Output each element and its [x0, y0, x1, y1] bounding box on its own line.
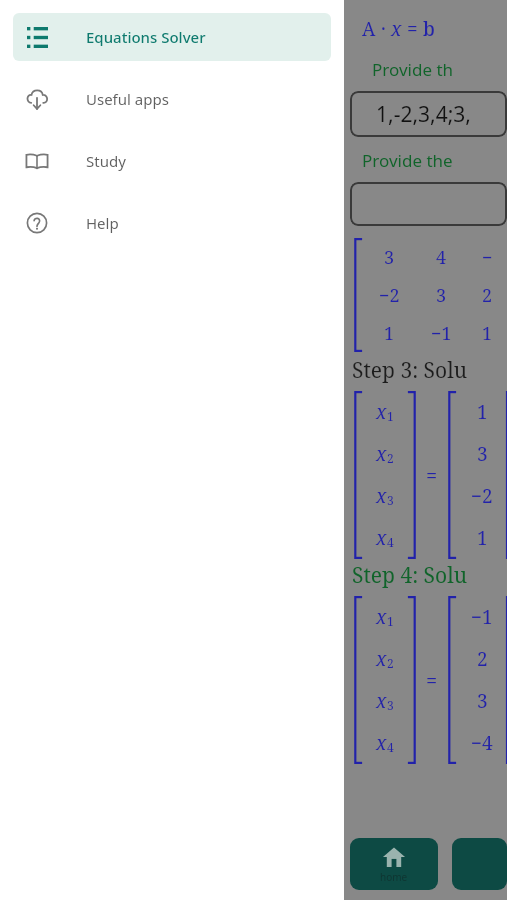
staticText: Provide the	[362, 149, 453, 172]
staticText: −4	[471, 730, 493, 756]
staticText: ·	[376, 16, 391, 42]
staticText: Useful apps	[86, 89, 169, 109]
staticText: 2	[477, 646, 488, 672]
staticText: 4	[436, 245, 447, 270]
staticText: x	[376, 441, 387, 467]
staticText: 1	[477, 525, 488, 551]
staticText: 3	[387, 697, 394, 713]
staticText: x	[376, 399, 387, 425]
staticText: =	[426, 667, 438, 694]
staticText: Help	[86, 213, 119, 233]
staticText: 2	[482, 283, 493, 308]
staticText: 1	[387, 613, 394, 629]
staticText: 4	[387, 739, 394, 755]
staticText: x	[376, 604, 387, 630]
staticText: x	[376, 688, 387, 714]
staticText: 1	[482, 321, 493, 346]
button[interactable]: Help	[13, 199, 331, 247]
staticText: Step 4: Solu	[352, 561, 467, 590]
button[interactable]: Study	[13, 137, 331, 185]
staticText: −2	[471, 483, 493, 509]
staticText: home	[380, 870, 408, 884]
staticText: 3	[436, 283, 447, 308]
staticText: 2	[387, 655, 394, 671]
staticText: Provide th	[372, 58, 454, 81]
staticText: x	[376, 646, 387, 672]
staticText: −1	[471, 604, 493, 630]
staticText: 1,-2,3,4;3,	[376, 100, 471, 129]
staticText: −	[482, 245, 493, 270]
staticText: 3	[384, 245, 395, 270]
button[interactable]: Next	[452, 838, 507, 890]
staticText: 1	[477, 399, 488, 425]
staticText: −2	[379, 283, 400, 308]
staticText: 4	[387, 534, 394, 550]
staticText: 3	[477, 688, 488, 714]
staticText: b	[423, 16, 435, 42]
staticText: =	[426, 462, 438, 489]
staticText: 2	[387, 450, 394, 466]
staticText: −1	[431, 321, 452, 346]
button[interactable]	[350, 182, 507, 226]
staticText: 1	[387, 408, 394, 424]
staticText: x	[376, 483, 387, 509]
button[interactable]: 1,-2,3,4;3,	[350, 91, 507, 137]
staticText: 1	[384, 321, 395, 346]
staticText: x	[376, 525, 387, 551]
button[interactable]: Useful apps	[13, 75, 331, 123]
button[interactable]: Equations Solver	[13, 13, 331, 61]
staticText: Study	[86, 151, 126, 171]
staticText: 3	[477, 441, 488, 467]
staticText: A	[362, 16, 376, 42]
staticText: =	[402, 16, 423, 42]
staticText: Equations Solver	[86, 27, 206, 47]
staticText: 3	[387, 492, 394, 508]
staticText: x	[391, 16, 402, 42]
staticText: Step 3: Solu	[352, 356, 467, 385]
staticText: x	[376, 730, 387, 756]
button[interactable]: home	[350, 838, 438, 890]
